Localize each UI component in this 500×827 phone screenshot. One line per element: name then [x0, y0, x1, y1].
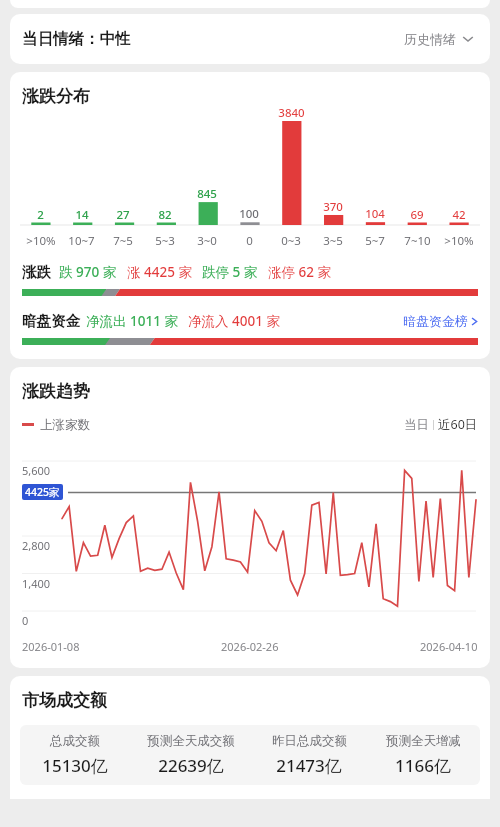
- staticText: 近60日: [438, 416, 478, 433]
- staticText: 10~7: [68, 233, 95, 249]
- staticText: 15130亿: [42, 754, 108, 777]
- staticText: 21473亿: [276, 754, 342, 777]
- staticText: 1166亿: [395, 754, 451, 777]
- button[interactable]: 预测全天成交额: [130, 733, 252, 777]
- staticText: 5,600: [22, 463, 51, 478]
- staticText: 2026-04-10: [420, 639, 478, 654]
- staticText: 总成交额: [50, 733, 100, 749]
- staticText: 3840: [278, 105, 305, 121]
- staticText: 当日情绪：中性: [22, 29, 131, 49]
- button[interactable]: 暗盘资金榜: [403, 313, 478, 329]
- button[interactable]: 总成交额: [20, 733, 130, 777]
- staticText: 净流出 1011 家: [86, 312, 178, 330]
- staticText: 5~7: [365, 233, 385, 249]
- staticText: 暗盘资金榜: [403, 313, 468, 329]
- staticText: 14: [75, 207, 89, 223]
- button[interactable]: 涨跌: [10, 263, 490, 281]
- staticText: 3~0: [197, 233, 217, 249]
- button[interactable]: 历史情绪: [400, 27, 478, 51]
- staticText: 2: [37, 207, 44, 223]
- staticText: 22639亿: [158, 754, 224, 777]
- staticText: >10%: [444, 233, 474, 249]
- staticText: 27: [116, 207, 130, 223]
- staticText: 2026-01-08: [22, 639, 80, 654]
- staticText: 0: [246, 233, 253, 249]
- staticText: 0~3: [281, 233, 301, 249]
- staticText: 104: [365, 206, 385, 222]
- button[interactable]: 预测全天增减: [366, 733, 480, 777]
- staticText: 预测全天增减: [386, 733, 461, 749]
- staticText: 1,400: [22, 576, 51, 591]
- staticText: 0: [22, 613, 29, 628]
- staticText: 涨跌: [22, 263, 51, 281]
- button[interactable]: 昨日总成交额: [252, 733, 366, 777]
- staticText: 82: [158, 207, 172, 223]
- staticText: 暗盘资金: [22, 312, 80, 330]
- staticText: 涨 4425 家: [127, 263, 192, 281]
- staticText: 历史情绪: [404, 31, 456, 47]
- staticText: 昨日总成交额: [272, 733, 347, 749]
- button[interactable]: 当日: [404, 416, 478, 433]
- staticText: 69: [410, 207, 424, 223]
- staticText: 42: [452, 207, 466, 223]
- staticText: 370: [323, 199, 343, 215]
- staticText: 净流入 4001 家: [188, 312, 280, 330]
- staticText: 涨跌趋势: [22, 381, 90, 402]
- staticText: >10%: [26, 233, 56, 249]
- staticText: 2,800: [22, 538, 51, 553]
- staticText: 2026-02-26: [221, 639, 279, 654]
- staticText: 3~5: [323, 233, 343, 249]
- staticText: 跌 970 家: [59, 263, 117, 281]
- staticText: 涨停 62 家: [268, 263, 331, 281]
- staticText: 7~5: [113, 233, 133, 249]
- staticText: 跌停 5 家: [202, 263, 258, 281]
- staticText: 100: [239, 206, 259, 222]
- staticText: 5~3: [155, 233, 175, 249]
- staticText: 预测全天成交额: [147, 733, 235, 749]
- staticText: 市场成交额: [22, 690, 107, 711]
- staticText: 7~10: [404, 233, 431, 249]
- staticText: 当日: [404, 417, 429, 433]
- staticText: 845: [197, 186, 217, 202]
- staticText: 4425家: [25, 485, 60, 499]
- staticText: 上涨家数: [40, 417, 90, 433]
- staticText: 涨跌分布: [22, 86, 90, 107]
